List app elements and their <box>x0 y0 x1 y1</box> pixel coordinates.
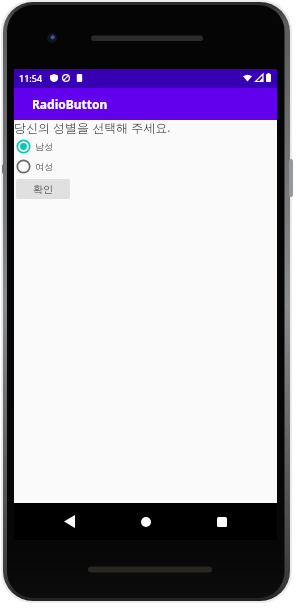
button[interactable] <box>212 511 232 532</box>
staticText: RadioButton <box>32 96 108 112</box>
button[interactable] <box>136 511 156 532</box>
button[interactable] <box>59 511 79 532</box>
staticText: 남성 <box>35 141 53 152</box>
staticText: 11:54 <box>19 72 43 84</box>
button[interactable]: 확인 <box>16 179 70 199</box>
staticText: 여성 <box>35 161 53 172</box>
staticText: 당신의 성별을 선택해 주세요. <box>14 119 171 135</box>
staticText: 확인 <box>33 183 53 196</box>
button[interactable]: 여성 <box>17 160 53 173</box>
button[interactable]: 남성 <box>17 140 53 153</box>
